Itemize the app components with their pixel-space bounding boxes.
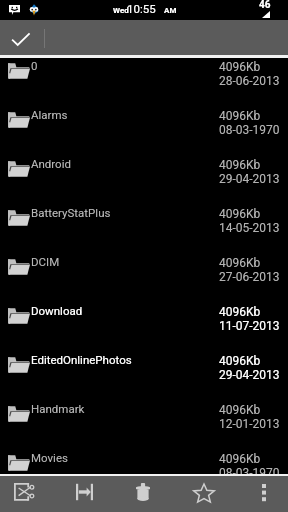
staticText: Android [31, 157, 71, 170]
button[interactable]: EditedOnlinePhotos [0, 352, 288, 401]
staticText: 0 [31, 59, 38, 72]
button[interactable]: BatteryStatPlus [0, 205, 288, 254]
button[interactable]: Delete [115, 476, 173, 512]
staticText: 11-07-2013 [219, 319, 280, 333]
button[interactable]: Move [58, 476, 116, 512]
button[interactable]: Android [0, 156, 288, 205]
button[interactable]: Favourite [173, 476, 231, 512]
staticText: 4096Kb [219, 354, 261, 368]
staticText: 4096Kb [219, 158, 261, 172]
staticText: Wed [113, 6, 129, 15]
staticText: Download [31, 304, 83, 317]
button[interactable]: Handmark [0, 401, 288, 450]
staticText: 4096Kb [219, 256, 261, 270]
staticText: 4096Kb [219, 207, 261, 221]
staticText: 10:55 [127, 2, 156, 15]
staticText: 46 [259, 0, 271, 11]
button[interactable]: Download [0, 303, 288, 352]
button[interactable]: Movies [0, 450, 288, 499]
staticText: Alarms [31, 108, 68, 121]
staticText: BatteryStatPlus [31, 206, 111, 219]
staticText: 4096Kb [219, 305, 261, 319]
staticText: 29-04-2013 [219, 172, 280, 186]
staticText: 14-05-2013 [219, 221, 280, 235]
staticText: Handmark [31, 402, 85, 415]
staticText: DCIM [31, 255, 60, 268]
staticText: EditedOnlinePhotos [31, 353, 132, 366]
button[interactable]: 0 [0, 58, 288, 107]
button[interactable]: Cut [0, 476, 58, 512]
button[interactable]: DCIM [0, 254, 288, 303]
staticText: 4096Kb [219, 403, 261, 417]
staticText: 4096Kb [219, 109, 261, 123]
button[interactable]: More options [230, 476, 288, 512]
button[interactable]: Select all [0, 20, 44, 55]
staticText: Movies [31, 451, 68, 464]
staticText: 08-03-1970 [219, 466, 280, 480]
staticText: 4096Kb [219, 60, 261, 74]
staticText: 4096Kb [219, 452, 261, 466]
staticText: 08-03-1970 [219, 123, 280, 137]
staticText: 12-01-2013 [219, 417, 280, 431]
staticText: 29-04-2013 [219, 368, 280, 382]
button[interactable]: Alarms [0, 107, 288, 156]
staticText: 28-06-2013 [219, 74, 280, 88]
staticText: AM [164, 6, 177, 15]
staticText: 27-06-2013 [219, 270, 280, 284]
